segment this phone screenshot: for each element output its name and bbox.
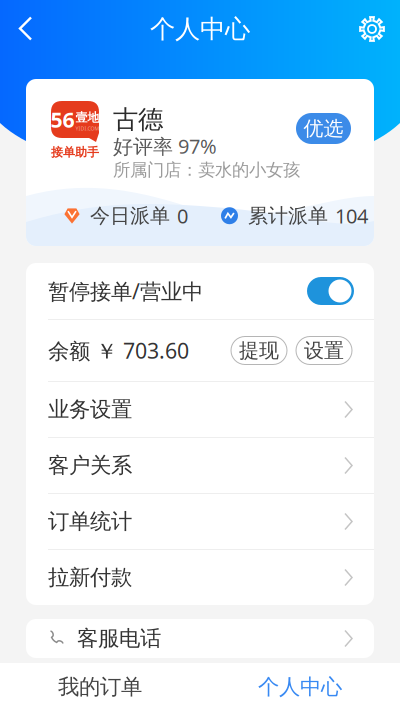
button[interactable]: 优选 (296, 113, 351, 144)
staticText: 业务设置 (48, 396, 132, 423)
staticText: 客户关系 (48, 452, 132, 479)
staticText: YIDI.COM (75, 125, 99, 132)
staticText: 设置 (304, 338, 344, 363)
staticText: 所属门店：卖水的小女孩 (113, 159, 300, 181)
staticText: 订单统计 (48, 508, 132, 535)
staticText: 56 (50, 105, 74, 134)
button[interactable]: 客服电话 (26, 619, 374, 658)
staticText: 今日派单 (90, 203, 170, 228)
staticText: 拉新付款 (48, 564, 132, 591)
staticText: 好评率 97% (113, 133, 217, 159)
staticText: 余额 ￥ 703.60 (48, 336, 189, 365)
button[interactable]: 客户关系 (26, 438, 374, 493)
staticText: 累计派单 (248, 203, 328, 228)
button[interactable]: 我的订单 (0, 663, 200, 711)
staticText: 优选 (303, 116, 343, 141)
button[interactable]: 暂停接单/营业中 (26, 263, 374, 319)
staticText: 104 (335, 202, 368, 229)
staticText: 接单助手 (51, 145, 99, 160)
button[interactable]: 拉新付款 (26, 550, 374, 605)
staticText: 0 (177, 202, 188, 229)
staticText: 古德 (113, 104, 163, 135)
button[interactable]: 个人中心 (200, 663, 400, 711)
button[interactable]: 订单统计 (26, 494, 374, 549)
button[interactable]: Back (0, 0, 50, 58)
button[interactable]: Settings (343, 0, 400, 58)
button[interactable]: 设置 (296, 336, 352, 364)
staticText: 壹地 (75, 110, 99, 125)
staticText: 个人中心 (150, 13, 250, 44)
button[interactable]: 提现 (231, 336, 287, 364)
staticText: 暂停接单/营业中 (48, 277, 203, 305)
staticText: 我的订单 (58, 674, 142, 700)
staticText: 提现 (239, 338, 279, 363)
staticText: 客服电话 (77, 625, 161, 652)
staticText: 个人中心 (258, 674, 342, 700)
button[interactable]: 业务设置 (26, 382, 374, 437)
